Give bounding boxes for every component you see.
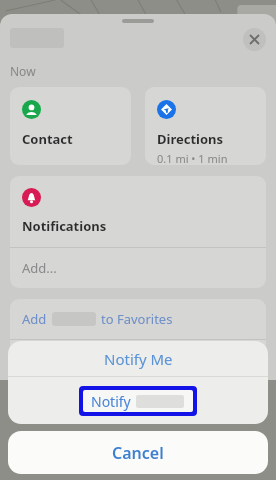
- button[interactable]: Contact: [10, 87, 131, 165]
- staticText: Notify Me: [104, 349, 173, 369]
- button[interactable]: Close: [243, 28, 266, 51]
- button[interactable]: Notifications: [10, 176, 266, 247]
- staticText: to Favorites: [101, 310, 173, 328]
- staticText: Now: [10, 63, 36, 79]
- button[interactable]: Notify Me: [8, 341, 268, 376]
- staticText: Notify: [91, 392, 131, 411]
- button[interactable]: Add: [10, 299, 266, 339]
- button[interactable]: Directions: [145, 87, 266, 165]
- staticText: Notifications: [22, 217, 107, 235]
- staticText: 0.1 mi • 1 min: [157, 151, 228, 165]
- staticText: Directions: [157, 130, 224, 148]
- button[interactable]: Edit Location Name: [10, 340, 266, 380]
- button[interactable]: Notify: [8, 377, 268, 424]
- staticText: Cancel: [112, 442, 164, 464]
- button[interactable]: Cancel: [8, 431, 268, 474]
- staticText: Add: [22, 310, 47, 328]
- staticText: Edit Location Name: [22, 351, 141, 369]
- staticText: Add...: [22, 259, 57, 277]
- staticText: Contact: [22, 130, 73, 148]
- button[interactable]: Add...: [10, 248, 266, 288]
